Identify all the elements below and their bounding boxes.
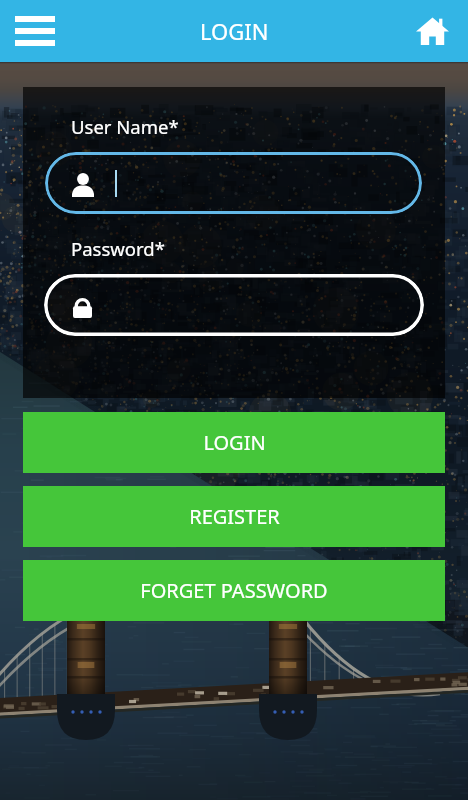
button[interactable] [44, 274, 424, 336]
button[interactable]: REGISTER [23, 486, 445, 547]
staticText: Password* [71, 236, 165, 261]
button[interactable]: Home [406, 0, 468, 62]
staticText: LOGIN [203, 429, 266, 456]
staticText: REGISTER [189, 503, 280, 530]
staticText: User Name* [71, 114, 179, 139]
staticText: LOGIN [200, 16, 269, 46]
staticText: FORGET PASSWORD [140, 577, 328, 604]
button[interactable]: Menu [0, 0, 70, 62]
button[interactable]: LOGIN [23, 412, 445, 473]
button[interactable] [45, 152, 422, 214]
button[interactable]: FORGET PASSWORD [23, 560, 445, 621]
